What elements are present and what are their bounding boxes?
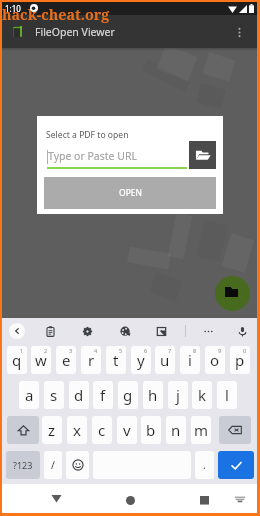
staticText: g <box>123 385 133 405</box>
button[interactable]: Stickers <box>152 322 170 340</box>
button[interactable]: Home <box>121 491 139 509</box>
button[interactable]: h <box>143 381 163 409</box>
staticText: 4 <box>94 347 98 354</box>
button[interactable]: Shift <box>7 416 39 444</box>
button[interactable]: Voice input <box>233 322 251 340</box>
button[interactable]: z <box>42 416 62 444</box>
button[interactable]: f <box>93 381 113 409</box>
button[interactable]: a <box>19 381 39 409</box>
staticText: Type or Paste URL <box>48 149 137 163</box>
staticText: n <box>171 420 181 440</box>
staticText: o <box>210 350 220 370</box>
staticText: e <box>62 350 71 370</box>
button[interactable]: r <box>81 346 101 374</box>
button[interactable]: o <box>205 346 225 374</box>
button[interactable]: s <box>44 381 64 409</box>
staticText: a <box>25 385 34 405</box>
staticText: Select a PDF to open <box>46 129 129 141</box>
button[interactable]: Back <box>9 323 25 339</box>
button[interactable]: More options <box>199 322 217 340</box>
button[interactable]: i <box>180 346 200 374</box>
button[interactable]: . <box>195 451 214 479</box>
button[interactable]: e <box>56 346 76 374</box>
staticText: s <box>50 385 58 405</box>
staticText: 3 <box>69 347 73 354</box>
button[interactable]: Back <box>47 489 65 507</box>
staticText: 6 <box>144 347 148 354</box>
button[interactable]: c <box>92 416 112 444</box>
staticText: u <box>160 350 170 370</box>
staticText: q <box>12 350 22 370</box>
button[interactable]: Enter <box>218 451 254 479</box>
staticText: 8 <box>193 347 197 354</box>
button[interactable]: t <box>106 346 126 374</box>
button[interactable]: b <box>141 416 161 444</box>
button[interactable]: Clipboard <box>41 322 59 340</box>
button[interactable]: ?123 <box>6 451 40 479</box>
staticText: p <box>235 350 245 370</box>
staticText: k <box>198 385 207 405</box>
button[interactable]: m <box>191 416 211 444</box>
staticText: t <box>113 350 119 370</box>
staticText: OPEN <box>119 187 142 199</box>
staticText: i <box>188 350 192 370</box>
button[interactable]: k <box>192 381 212 409</box>
staticText: x <box>73 420 81 440</box>
button[interactable]: w <box>31 346 51 374</box>
staticText: 5 <box>119 347 123 354</box>
button[interactable]: g <box>118 381 138 409</box>
button[interactable]: Hide keyboard <box>234 493 246 505</box>
button[interactable]: y <box>131 346 151 374</box>
staticText: l <box>225 385 229 405</box>
button[interactable]: Emoji <box>66 451 89 479</box>
button[interactable]: Recents <box>195 491 213 509</box>
staticText: y <box>137 350 145 370</box>
button[interactable]: Settings <box>78 322 96 340</box>
staticText: 9 <box>218 347 222 354</box>
staticText: 7 <box>168 347 172 354</box>
button[interactable]: More options <box>225 18 253 46</box>
button[interactable]: l <box>217 381 237 409</box>
staticText: 1 <box>20 347 24 354</box>
staticText: d <box>74 385 84 405</box>
staticText: c <box>98 420 106 440</box>
staticText: ?123 <box>13 459 33 471</box>
staticText: 1:10 <box>5 3 21 14</box>
staticText: r <box>88 350 95 370</box>
staticText: FileOpen Viewer <box>35 25 115 39</box>
staticText: m <box>194 420 209 440</box>
button[interactable]: / <box>44 451 62 479</box>
staticText: 0 <box>243 347 247 354</box>
button[interactable]: Open file <box>215 276 250 311</box>
button[interactable]: x <box>67 416 87 444</box>
button[interactable]: v <box>117 416 137 444</box>
button[interactable]: p <box>230 346 250 374</box>
button[interactable]: u <box>155 346 175 374</box>
staticText: j <box>176 385 180 405</box>
button[interactable]: d <box>69 381 89 409</box>
button[interactable]: Backspace <box>219 416 251 444</box>
button[interactable]: Themes <box>116 322 134 340</box>
button[interactable]: OPEN <box>44 177 216 209</box>
staticText: h <box>148 385 158 405</box>
staticText: 2 <box>44 347 48 354</box>
button[interactable]: Browse files <box>189 141 216 169</box>
button[interactable]: q <box>7 346 27 374</box>
staticText: w <box>35 350 47 370</box>
staticText: z <box>48 420 56 440</box>
staticText: b <box>146 420 156 440</box>
staticText: hack-cheat.org <box>2 5 110 24</box>
staticText: . <box>203 458 206 472</box>
button[interactable]: n <box>166 416 186 444</box>
staticText: f <box>100 385 106 405</box>
button[interactable]: j <box>168 381 188 409</box>
staticText: v <box>123 420 131 440</box>
staticText: / <box>51 458 55 472</box>
